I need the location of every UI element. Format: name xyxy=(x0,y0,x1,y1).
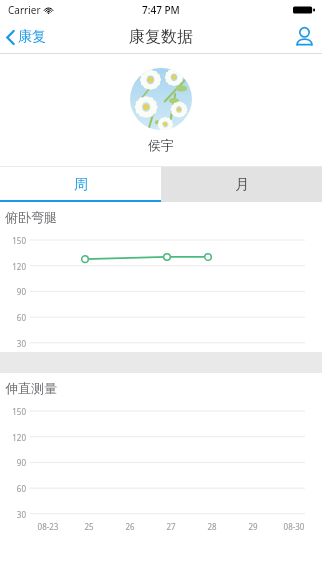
staticText: Carrier xyxy=(8,3,41,17)
staticText: 08-30 xyxy=(278,521,310,532)
staticText: 28 xyxy=(196,350,228,361)
staticText: 120 xyxy=(4,432,26,443)
staticText: 30 xyxy=(4,509,26,520)
button[interactable]: Profile xyxy=(287,22,322,51)
staticText: 27 xyxy=(155,521,187,532)
button[interactable]: 月 xyxy=(161,167,322,202)
staticText: 周 xyxy=(74,176,88,194)
staticText: 30 xyxy=(4,338,26,349)
staticText: 俯卧弯腿 xyxy=(5,209,57,225)
staticText: 康复数据 xyxy=(129,27,193,47)
staticText: 60 xyxy=(4,312,26,323)
button[interactable]: 康复 xyxy=(0,23,56,51)
staticText: 7:47 PM xyxy=(142,3,180,17)
staticText: 90 xyxy=(4,286,26,297)
staticText: 25 xyxy=(73,350,105,361)
staticText: 60 xyxy=(4,483,26,494)
staticText: 90 xyxy=(4,457,26,468)
staticText: 29 xyxy=(237,521,269,532)
staticText: 月 xyxy=(235,176,249,194)
staticText: 侯宇 xyxy=(148,137,174,153)
staticText: 150 xyxy=(4,406,26,417)
staticText: 康复 xyxy=(18,28,46,46)
staticText: 08-23 xyxy=(32,521,64,532)
button[interactable] xyxy=(130,68,192,130)
staticText: 25 xyxy=(73,521,105,532)
staticText: 27 xyxy=(155,350,187,361)
staticText: 120 xyxy=(4,261,26,272)
staticText: 150 xyxy=(4,235,26,246)
staticText: 26 xyxy=(114,350,146,361)
staticText: 28 xyxy=(196,521,228,532)
staticText: 29 xyxy=(237,350,269,361)
staticText: 伸直测量 xyxy=(5,380,57,396)
button[interactable]: 周 xyxy=(0,167,161,202)
staticText: 08-23 xyxy=(32,350,64,361)
staticText: 08-30 xyxy=(278,350,310,361)
staticText: 26 xyxy=(114,521,146,532)
